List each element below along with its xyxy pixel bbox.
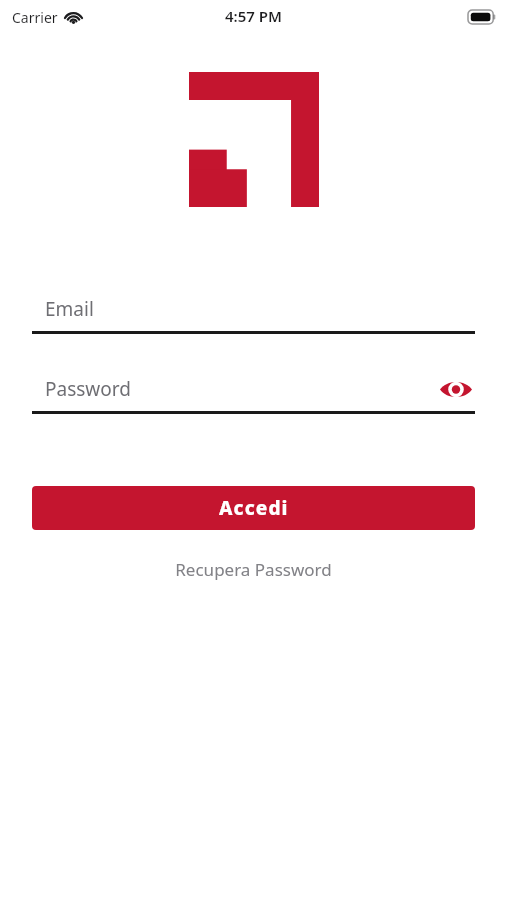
staticText: 4:57 PM <box>225 6 282 26</box>
staticText: Accedi <box>219 495 289 521</box>
button[interactable]: Email <box>32 287 475 334</box>
button[interactable]: Recupera Password <box>0 552 507 587</box>
staticText: Recupera Password <box>175 558 332 581</box>
staticText: Password <box>45 376 131 402</box>
button[interactable]: Accedi <box>32 486 475 530</box>
button[interactable]: Password <box>32 367 475 414</box>
button[interactable]: Show password <box>437 370 475 408</box>
staticText: Carrier <box>12 8 58 27</box>
staticText: Email <box>45 296 94 322</box>
